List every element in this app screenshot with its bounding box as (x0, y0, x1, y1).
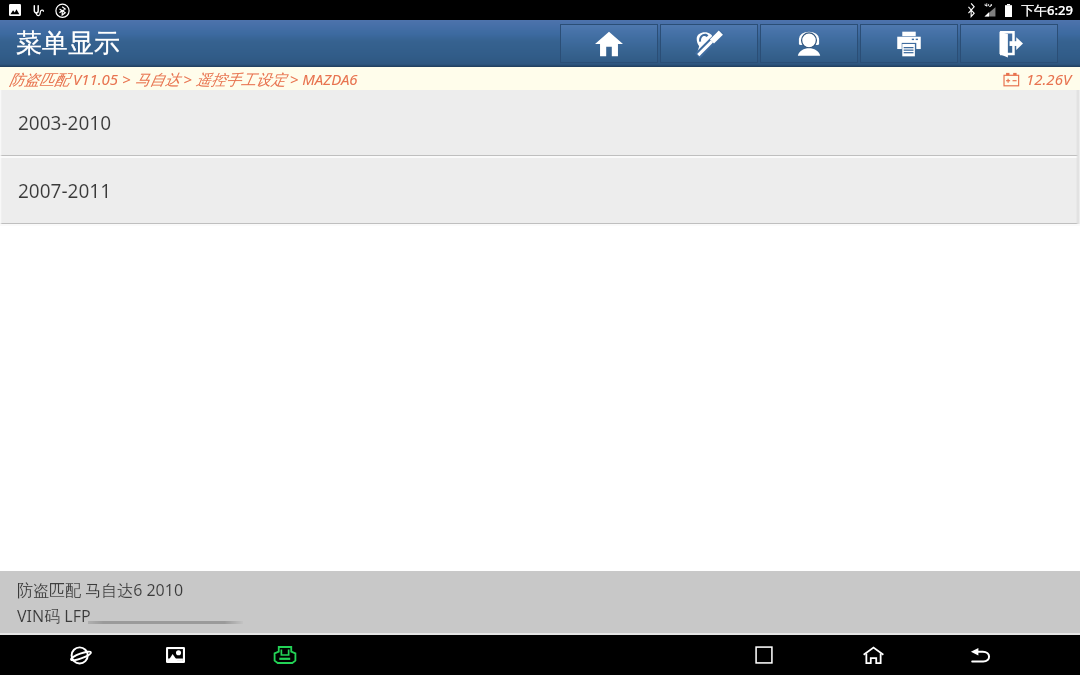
button[interactable]: Back (970, 635, 992, 675)
button[interactable]: Globe (70, 635, 93, 675)
staticText: 2007-2011 (18, 178, 112, 204)
button[interactable]: Screenshots (166, 635, 185, 675)
staticText: 防盗匹配 马自达6 2010 (17, 579, 184, 601)
button[interactable]: Support (759, 22, 859, 65)
staticText: 防盗匹配 V11.05 > 马自达 > 遥控手工设定 > MAZDA6 (9, 69, 358, 89)
staticText: 2003-2010 (18, 110, 112, 136)
button[interactable]: Home (559, 22, 659, 65)
button[interactable]: 2007-2011 (0, 158, 1080, 223)
button[interactable]: Recents (755, 635, 773, 675)
button[interactable]: Print (859, 22, 959, 65)
button[interactable]: Home (863, 635, 884, 675)
button[interactable]: Tools (659, 22, 759, 65)
staticText: 12.26V (1026, 69, 1072, 89)
button[interactable]: Exit (959, 22, 1059, 65)
staticText: 菜单显示 (16, 27, 120, 60)
staticText: 下午6:29 (1021, 1, 1073, 19)
button[interactable]: VCI (272, 635, 298, 675)
staticText: VIN码 LFP (17, 605, 91, 627)
button[interactable]: 2003-2010 (0, 90, 1080, 155)
